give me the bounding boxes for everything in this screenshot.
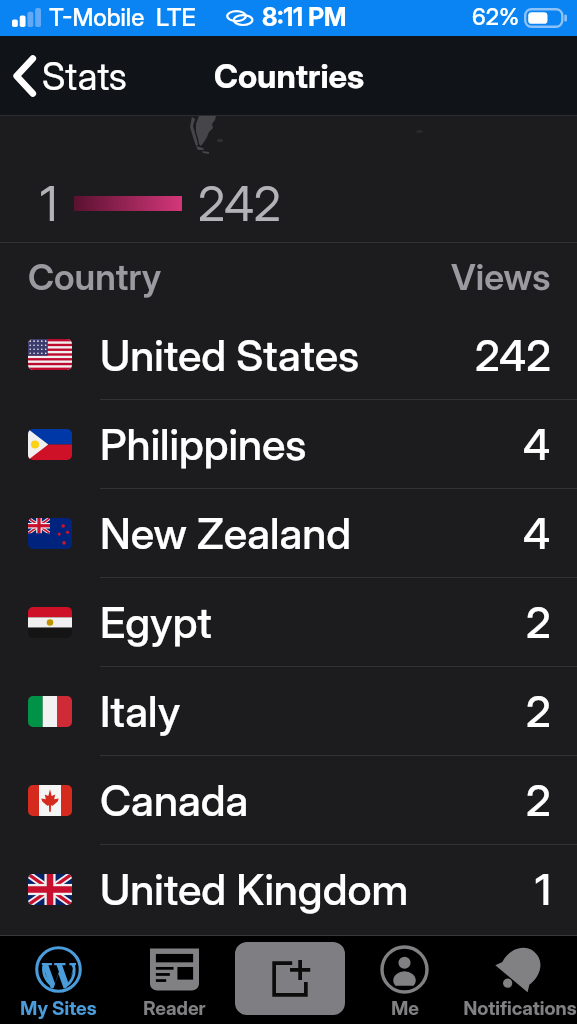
staticText: 4 — [523, 507, 551, 559]
staticText: Country — [28, 255, 162, 299]
staticText: Philippines — [100, 418, 307, 470]
staticText: 1 — [535, 863, 551, 915]
button[interactable]: United States — [0, 310, 577, 399]
staticText: My Sites — [20, 997, 97, 1020]
staticText: 4 — [523, 418, 551, 470]
staticText: Reader — [143, 997, 206, 1020]
staticText: Views — [451, 255, 551, 299]
staticText: 1 — [40, 174, 58, 232]
staticText: 2 — [526, 685, 551, 737]
staticText: 2 — [526, 596, 551, 648]
button[interactable]: Canada — [0, 756, 577, 844]
button[interactable]: Reader — [116, 936, 232, 1024]
staticText: T-Mobile — [49, 3, 145, 32]
button[interactable]: Notifications — [462, 936, 577, 1024]
button[interactable]: New post — [235, 942, 345, 1015]
staticText: Canada — [100, 774, 249, 826]
button[interactable]: New Zealand — [0, 489, 577, 577]
staticText: New Zealand — [100, 507, 352, 559]
button[interactable]: Philippines — [0, 400, 577, 488]
button[interactable]: My Sites — [0, 936, 116, 1024]
staticText: 8:11 PM — [262, 2, 347, 32]
button[interactable]: Stats — [0, 47, 139, 105]
button[interactable]: Me — [347, 936, 462, 1024]
button[interactable]: Egypt — [0, 578, 577, 666]
staticText: 242 — [475, 329, 551, 381]
staticText: United Kingdom — [100, 863, 409, 915]
staticText: 2 — [526, 774, 551, 826]
staticText: Egypt — [100, 596, 212, 648]
button[interactable]: United Kingdom — [0, 845, 577, 933]
staticText: Italy — [100, 685, 181, 737]
staticText: Me — [391, 997, 419, 1020]
button[interactable]: Italy — [0, 667, 577, 755]
staticText: United States — [100, 329, 360, 381]
staticText: Notifications — [463, 997, 577, 1020]
staticText: 62% — [472, 3, 520, 31]
staticText: LTE — [156, 3, 196, 32]
staticText: 242 — [198, 174, 281, 232]
staticText: Stats — [42, 53, 127, 99]
staticText: Countries — [214, 56, 365, 96]
